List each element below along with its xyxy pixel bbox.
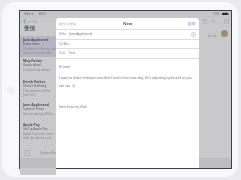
- staticText: I want to share some pictures that I too…: [59, 76, 192, 88]
- button[interactable]: Meg Parker: [20, 57, 56, 78]
- staticText: Cc/Bcc:: [59, 42, 70, 46]
- staticText: Jane Appleseed: [23, 102, 49, 107]
- button[interactable]: Apple Pay: [20, 121, 56, 142]
- staticText: Meg Parker: [23, 58, 43, 63]
- staticText: with the devices yet: [23, 136, 52, 140]
- staticText: メール: [27, 20, 38, 24]
- staticText: Sent from my iPad: [59, 105, 87, 109]
- button[interactable]: Derek Parker: [20, 78, 56, 101]
- button[interactable]: Add recipient: [191, 32, 196, 37]
- staticText: Derek Parker: [23, 79, 46, 84]
- button[interactable]: Delete: [202, 18, 208, 24]
- staticText: Kubernetes: [23, 42, 40, 46]
- staticText: New: [123, 21, 133, 27]
- staticText: Apple Pay: [23, 122, 40, 127]
- staticText: Jane A.: [208, 34, 217, 38]
- staticText: Are we taking off the: [23, 112, 54, 116]
- button[interactable]: キャンセル: [56, 22, 77, 26]
- staticText: 宛先:: [59, 32, 67, 36]
- button[interactable]: Reply: [211, 18, 217, 24]
- button[interactable]: New message: [25, 150, 30, 156]
- staticText: Updated Now: [40, 151, 59, 155]
- staticText: Guess what?: [23, 63, 42, 67]
- button[interactable]: Jack Appleseed: [20, 36, 56, 57]
- staticText: Apple Pay is the new: [23, 132, 53, 136]
- button[interactable]: Compose: [224, 18, 230, 24]
- staticText: Jack Appleseed: [23, 37, 49, 42]
- staticText: 100%: [213, 12, 220, 16]
- staticText: Set Up Apple Pay: [23, 127, 48, 131]
- button[interactable]: 送信: [188, 21, 199, 26]
- button[interactable]: メール: [23, 18, 38, 25]
- staticText: just fine!: [23, 93, 36, 97]
- staticText: The weather will be: [23, 89, 52, 93]
- staticText: I landed my dream: [23, 68, 51, 72]
- staticText: 件名:: [59, 51, 67, 55]
- staticText: 送信: [188, 21, 196, 26]
- staticText: iPad ⊕ Wi‐Fi: [24, 12, 46, 16]
- staticText: 受信: [24, 25, 35, 32]
- staticText: キャンセル: [59, 22, 77, 26]
- staticText: Olivia's Birthday: [23, 84, 47, 88]
- staticText: Test: [69, 51, 76, 55]
- staticText: Thanks for sharing, we: [23, 47, 57, 51]
- staticText: Jane Appleseed: [69, 32, 92, 36]
- button[interactable]: Jane Appleseed: [20, 101, 56, 121]
- staticText: Hi Jane!: [59, 65, 71, 69]
- staticText: Summer Plans: [23, 107, 45, 111]
- staticText: should do that soon: [23, 51, 53, 55]
